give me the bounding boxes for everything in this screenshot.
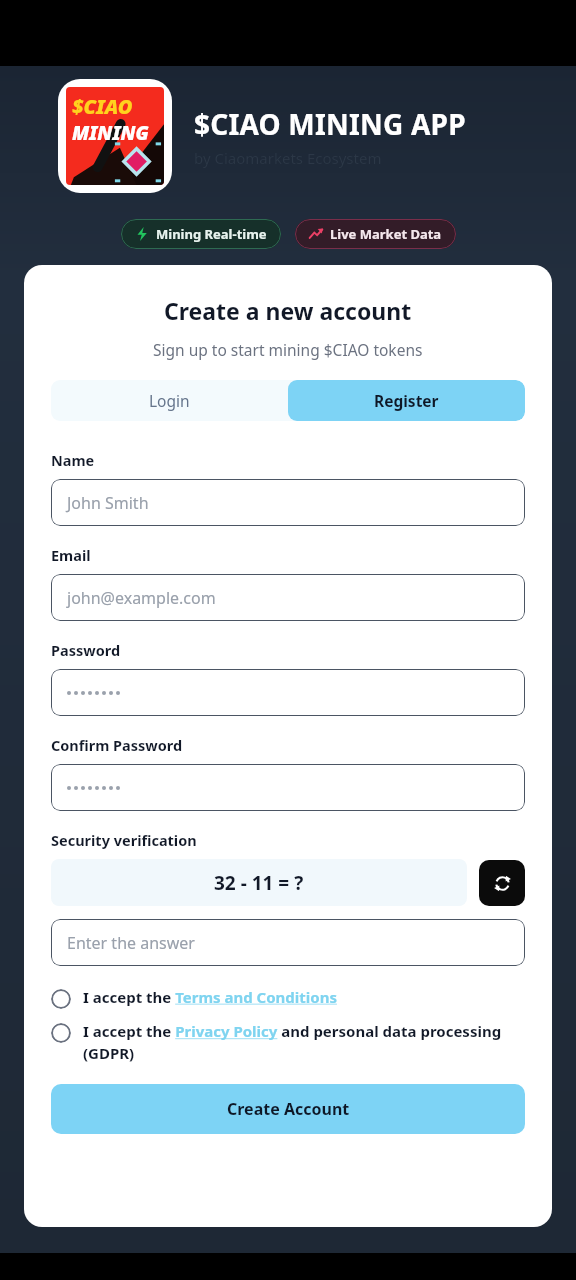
button[interactable]: John Smith: [51, 479, 525, 526]
staticText: Password: [51, 640, 121, 660]
staticText: Security verification: [51, 830, 197, 850]
button[interactable]: [51, 764, 525, 811]
button[interactable]: Register: [288, 380, 525, 421]
button[interactable]: Enter the answer: [51, 919, 525, 966]
staticText: Login: [149, 390, 190, 411]
staticText: by Ciaomarkets Ecosystem: [194, 148, 382, 168]
button[interactable]: Refresh captcha: [479, 860, 525, 906]
staticText: john@example.com: [67, 587, 216, 609]
staticText: $CIAO MINING APP: [194, 105, 466, 143]
button[interactable]: Mining Real-time: [121, 219, 281, 249]
button[interactable]: john@example.com: [51, 574, 525, 621]
staticText: Email: [51, 545, 91, 565]
button[interactable]: Login: [51, 380, 288, 421]
staticText: 32 - 11 = ?: [214, 870, 304, 896]
staticText: I accept the Terms and Conditions: [83, 987, 337, 1007]
staticText: MINING: [72, 120, 149, 146]
staticText: Create Account: [227, 1098, 350, 1120]
staticText: Confirm Password: [51, 735, 183, 755]
staticText: Enter the answer: [67, 932, 195, 954]
button[interactable]: I accept the Privacy Policy and personal…: [51, 1021, 525, 1064]
staticText: Register: [374, 390, 439, 411]
staticText: John Smith: [67, 492, 149, 514]
button[interactable]: I accept the Terms and Conditions: [51, 987, 525, 1009]
staticText: Sign up to start mining $CIAO tokens: [153, 339, 423, 360]
staticText: Mining Real-time: [156, 225, 267, 243]
button[interactable]: Create Account: [51, 1084, 525, 1134]
staticText: Live Market Data: [330, 225, 442, 243]
button[interactable]: App logo: [66, 87, 164, 185]
staticText: Create a new account: [164, 295, 412, 326]
button[interactable]: Live Market Data: [295, 219, 456, 249]
staticText: I accept the Privacy Policy and personal…: [83, 1021, 525, 1064]
staticText: $CIAO: [72, 93, 133, 120]
staticText: Name: [51, 450, 95, 470]
button[interactable]: [51, 669, 525, 716]
